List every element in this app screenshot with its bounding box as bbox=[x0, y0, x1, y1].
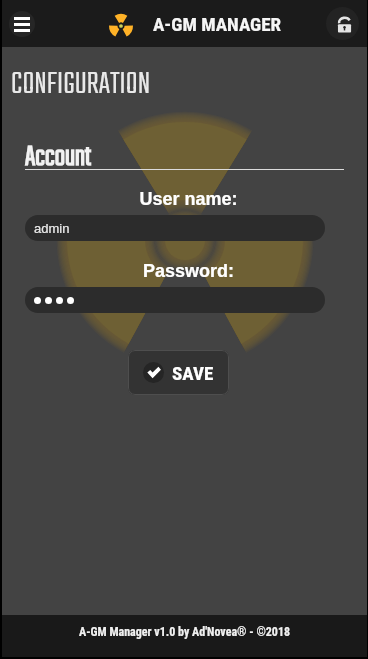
staticText: CONFIGURATION bbox=[11, 61, 151, 108]
staticText: A-GM Manager v1.0 by Ad'Novea® - ©2018 bbox=[79, 625, 291, 639]
staticText: admin bbox=[34, 221, 70, 236]
button[interactable]: Open navigation menu bbox=[9, 11, 35, 37]
button[interactable] bbox=[25, 287, 325, 313]
staticText: SAVE bbox=[172, 362, 214, 384]
staticText: User name: bbox=[29, 189, 348, 209]
button[interactable]: Unlock settings bbox=[326, 7, 359, 40]
staticText: Password: bbox=[29, 261, 348, 281]
button[interactable]: SAVE bbox=[128, 350, 229, 395]
staticText: A-GM MANAGER bbox=[153, 13, 282, 35]
button[interactable]: admin bbox=[25, 215, 325, 241]
staticText: Account bbox=[25, 136, 91, 179]
